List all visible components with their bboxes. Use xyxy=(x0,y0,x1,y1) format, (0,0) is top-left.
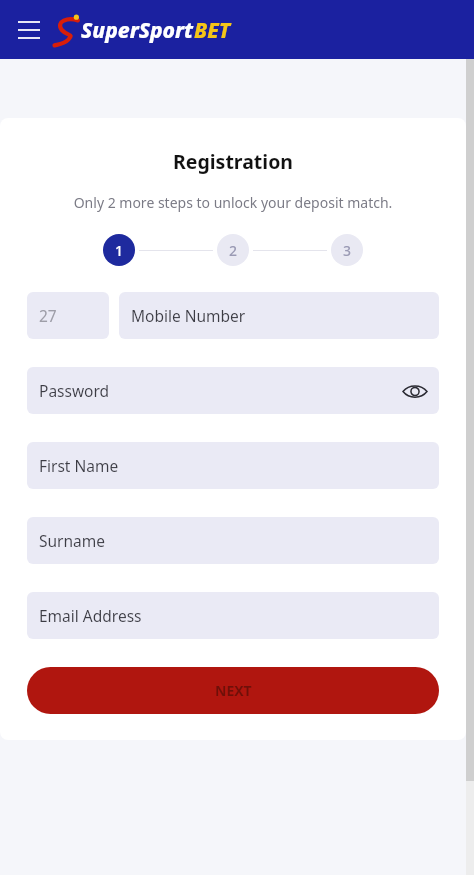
button[interactable]: Mobile Number xyxy=(119,292,439,339)
button[interactable]: 27 xyxy=(27,292,109,339)
button[interactable]: 3 xyxy=(331,234,363,266)
button[interactable]: Open menu xyxy=(14,15,44,45)
staticText: Only 2 more steps to unlock your deposit… xyxy=(0,193,466,212)
staticText: SuperSport xyxy=(81,16,194,45)
staticText: NEXT xyxy=(215,681,252,700)
button[interactable]: 1 xyxy=(103,234,135,266)
staticText: 27 xyxy=(39,305,57,326)
button[interactable]: Email Address xyxy=(27,592,439,639)
button[interactable]: First Name xyxy=(27,442,439,489)
staticText: Email Address xyxy=(39,605,142,626)
button[interactable]: NEXT xyxy=(27,667,439,714)
button[interactable]: Surname xyxy=(27,517,439,564)
staticText: First Name xyxy=(39,455,119,476)
button[interactable]: Show password xyxy=(397,373,433,409)
staticText: BET xyxy=(194,16,231,45)
staticText: 1 xyxy=(115,241,124,260)
staticText: 3 xyxy=(343,241,352,260)
staticText: Mobile Number xyxy=(131,305,246,326)
button[interactable]: Password xyxy=(27,367,439,414)
staticText: Registration xyxy=(0,148,466,175)
button[interactable]: SuperSportBET home xyxy=(54,14,231,46)
staticText: Password xyxy=(39,380,110,401)
staticText: 2 xyxy=(229,241,238,260)
staticText: Surname xyxy=(39,530,105,551)
button[interactable]: 2 xyxy=(217,234,249,266)
